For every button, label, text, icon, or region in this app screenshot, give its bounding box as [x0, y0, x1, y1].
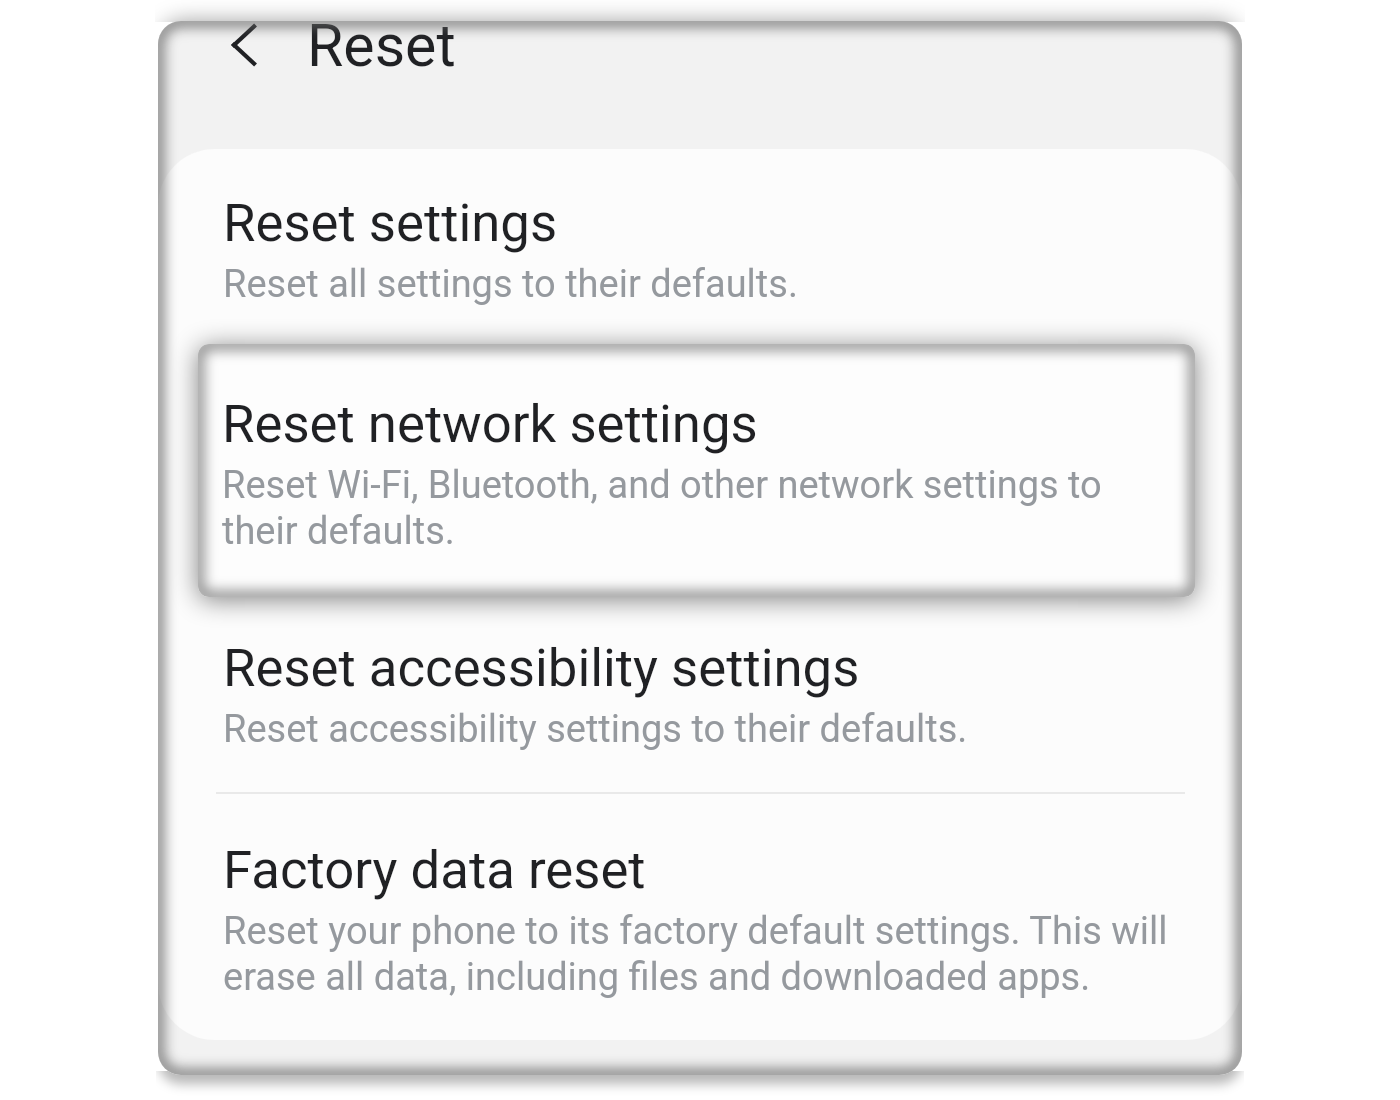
- button[interactable]: Navigate up: [210, 11, 278, 79]
- button[interactable]: Factory data reset: [158, 794, 1242, 1040]
- staticText: Reset your phone to its factory default …: [223, 909, 1186, 1000]
- button[interactable]: Reset network settings: [198, 344, 1195, 597]
- staticText: Factory data reset: [223, 839, 646, 901]
- staticText: Reset network settings: [222, 393, 758, 455]
- button[interactable]: Reset settings: [158, 152, 1242, 344]
- staticText: Reset Wi-Fi, Bluetooth, and other networ…: [222, 463, 1112, 554]
- staticText: Reset: [307, 11, 456, 80]
- staticText: Reset accessibility settings: [223, 637, 860, 699]
- staticText: Reset accessibility settings to their de…: [223, 707, 968, 752]
- staticText: Reset all settings to their defaults.: [223, 262, 798, 307]
- button[interactable]: Reset accessibility settings: [158, 597, 1242, 792]
- staticText: Reset settings: [223, 192, 558, 254]
